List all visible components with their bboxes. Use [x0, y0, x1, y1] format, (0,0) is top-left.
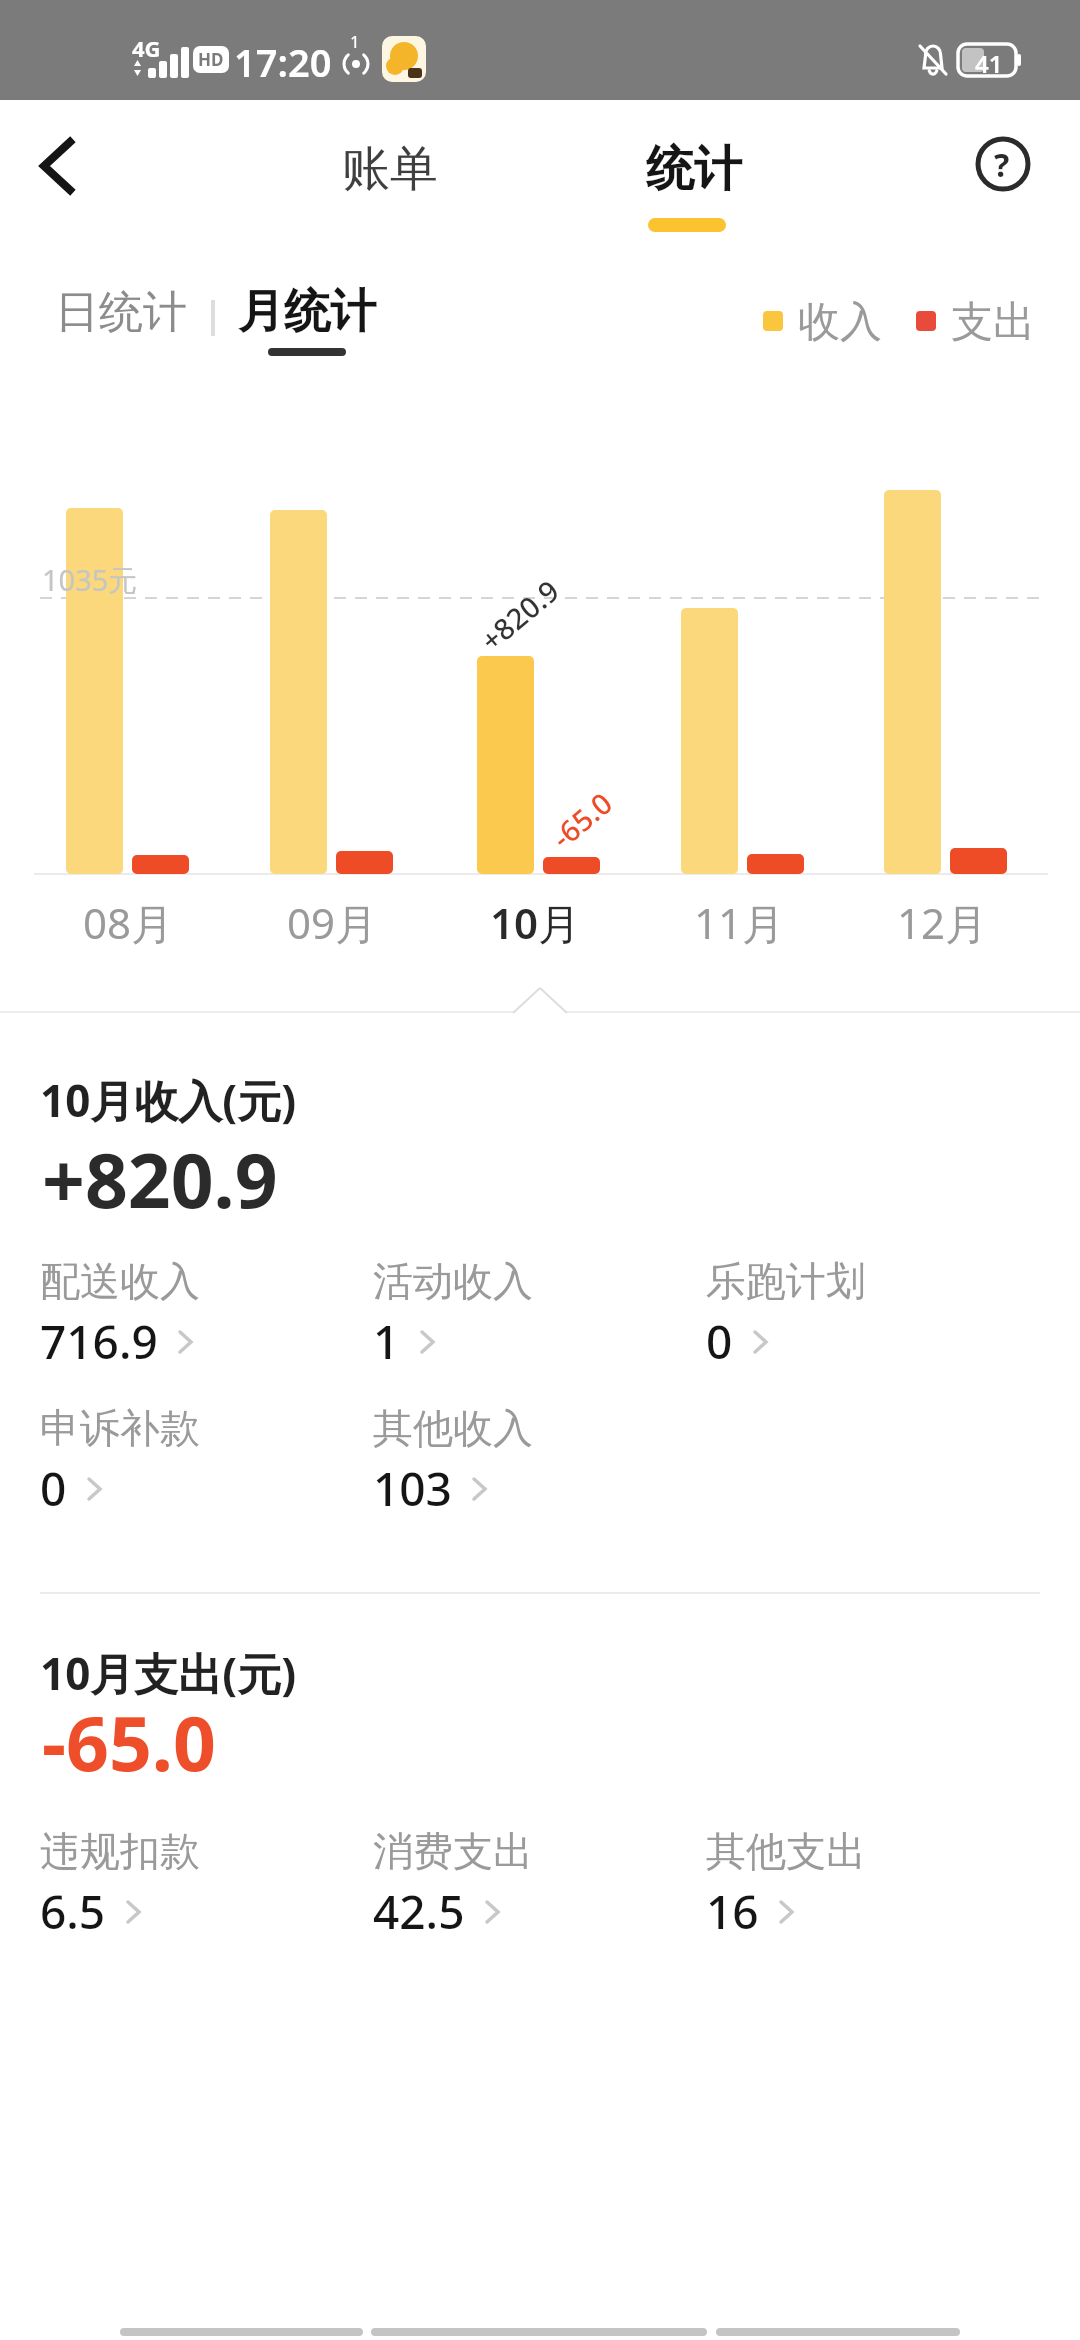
staticText: -65.0 — [543, 783, 618, 854]
button[interactable]: 1 — [373, 1310, 436, 1373]
button[interactable] — [20, 130, 96, 206]
staticText: +820.9 — [42, 1128, 278, 1230]
button[interactable]: 日统计 — [55, 285, 187, 340]
button[interactable]: 103 — [373, 1457, 488, 1520]
staticText: 支出 — [951, 296, 1035, 349]
staticText: 日统计 — [55, 285, 187, 340]
staticText: 10月支出(元) — [40, 1643, 297, 1703]
button[interactable]: 08月 — [73, 894, 183, 951]
button[interactable]: 6.5 — [40, 1880, 142, 1943]
staticText: 申诉补款 — [40, 1403, 200, 1453]
staticText: HD — [198, 48, 224, 71]
button[interactable]: 0 — [706, 1310, 769, 1373]
staticText: 09月 — [287, 894, 378, 951]
staticText: 16 — [706, 1880, 759, 1943]
staticText: 11月 — [694, 894, 785, 951]
button[interactable]: 09月 — [277, 894, 387, 951]
staticText: 1 — [350, 30, 360, 53]
button[interactable]: 11月 — [684, 894, 794, 951]
staticText: 0 — [40, 1457, 67, 1520]
staticText: 10月收入(元) — [40, 1070, 297, 1130]
staticText: +820.9 — [472, 571, 565, 657]
staticText: 41 — [975, 47, 1003, 80]
staticText: 4G — [132, 33, 161, 63]
staticText: 08月 — [83, 894, 174, 951]
staticText: 1035元 — [42, 560, 138, 600]
staticText: 其他支出 — [706, 1826, 866, 1876]
button[interactable]: 0 — [40, 1457, 103, 1520]
button[interactable]: 统计 — [646, 139, 742, 199]
staticText: 1 — [373, 1310, 400, 1373]
button[interactable]: 月统计 — [238, 283, 376, 341]
staticText: 716.9 — [40, 1310, 158, 1373]
staticText: 12月 — [897, 894, 988, 951]
button[interactable]: 10月 — [480, 894, 590, 951]
staticText: 6.5 — [40, 1880, 106, 1943]
staticText: 乐跑计划 — [706, 1256, 866, 1306]
button[interactable]: 42.5 — [373, 1880, 501, 1943]
staticText: 月统计 — [238, 283, 376, 341]
staticText: 统计 — [646, 139, 742, 199]
staticText: 配送收入 — [40, 1256, 200, 1306]
button[interactable]: 账单 — [342, 139, 438, 199]
button[interactable]: ? — [970, 131, 1036, 197]
staticText: ? — [994, 143, 1010, 187]
button[interactable]: 16 — [706, 1880, 795, 1943]
button[interactable]: 716.9 — [40, 1310, 194, 1373]
staticText: 其他收入 — [373, 1403, 533, 1453]
staticText: 17:20 — [234, 36, 332, 88]
staticText: 0 — [706, 1310, 733, 1373]
staticText: 103 — [373, 1457, 452, 1520]
staticText: 42.5 — [373, 1880, 465, 1943]
staticText: 活动收入 — [373, 1256, 533, 1306]
staticText: 消费支出 — [373, 1826, 533, 1876]
button[interactable]: 12月 — [887, 894, 997, 951]
staticText: 10月 — [490, 894, 581, 951]
staticText: 收入 — [798, 296, 882, 349]
staticText: 违规扣款 — [40, 1826, 200, 1876]
staticText: -65.0 — [42, 1691, 216, 1793]
